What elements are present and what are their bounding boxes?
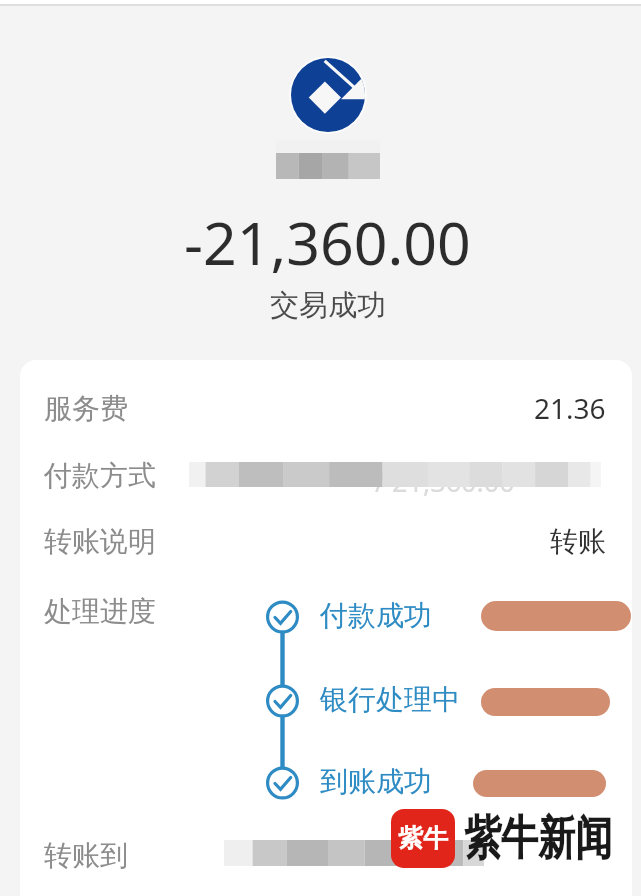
staticText: -21,360.00 [184, 202, 471, 282]
button[interactable]: 到账成功 [320, 764, 432, 799]
staticText: 21.36 [534, 389, 606, 427]
button[interactable]: 付款成功 [320, 598, 432, 633]
staticText: 转账到 [44, 838, 128, 873]
staticText: 转账 [550, 524, 606, 559]
staticText: 银行处理中 [320, 682, 460, 717]
staticText: 处理进度 [44, 594, 156, 629]
staticText: 紫牛 [398, 823, 448, 854]
staticText: 紫牛新闻 [464, 809, 612, 868]
staticText: 到账成功 [320, 764, 432, 799]
other: China Construction Bank [291, 58, 365, 132]
button[interactable]: 处理进度 [20, 579, 632, 829]
staticText: 付款方式 [44, 458, 156, 493]
staticText: 服务费 [44, 391, 128, 426]
staticText: / 21,360.00 [375, 463, 515, 500]
button[interactable]: 付款方式 [20, 447, 632, 503]
staticText: 付款成功 [320, 598, 432, 633]
staticText: 交易成功 [270, 287, 386, 324]
staticText: 转账说明 [44, 524, 156, 559]
button[interactable]: 银行处理中 [320, 682, 460, 717]
button[interactable]: 转账说明 [20, 513, 632, 569]
button[interactable]: 转账到 [20, 829, 632, 885]
button[interactable]: 服务费 [20, 380, 632, 436]
